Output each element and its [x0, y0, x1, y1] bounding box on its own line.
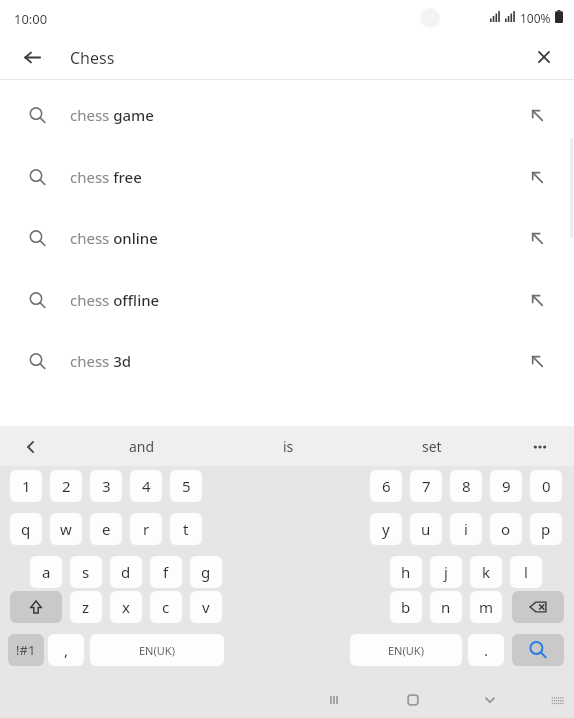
button[interactable]: d	[110, 556, 142, 588]
button[interactable]: 2	[50, 470, 82, 502]
button[interactable]: m	[470, 591, 502, 623]
button[interactable]: Insert suggestion chess 3d	[524, 348, 550, 374]
button[interactable]: o	[490, 513, 522, 545]
button[interactable]: 8	[450, 470, 482, 502]
staticText: EN(UK)	[139, 643, 175, 658]
button[interactable]: Insert suggestion chess free	[524, 164, 550, 190]
staticText: chess 3d	[70, 351, 132, 371]
button[interactable]: e	[90, 513, 122, 545]
button[interactable]: c	[150, 591, 182, 623]
button[interactable]: k	[470, 556, 502, 588]
button[interactable]: g	[190, 556, 222, 588]
button[interactable]: Backspace	[512, 591, 564, 623]
button[interactable]: 9	[490, 470, 522, 502]
button[interactable]: chess game	[0, 84, 574, 146]
button[interactable]: h	[390, 556, 422, 588]
button[interactable]: n	[430, 591, 462, 623]
staticText: l	[524, 562, 528, 582]
button[interactable]: Insert suggestion chess game	[524, 102, 550, 128]
button[interactable]: chess free	[0, 146, 574, 208]
button[interactable]: Clear search	[530, 43, 558, 71]
button[interactable]: u	[410, 513, 442, 545]
staticText: !#1	[16, 641, 36, 659]
button[interactable]: Insert suggestion chess online	[524, 225, 550, 251]
button[interactable]: 6	[370, 470, 402, 502]
button[interactable]: set	[386, 426, 478, 466]
button[interactable]: v	[190, 591, 222, 623]
staticText: 9	[502, 476, 511, 496]
staticText: 2	[62, 476, 71, 496]
button[interactable]: x	[110, 591, 142, 623]
button[interactable]: 0	[530, 470, 562, 502]
button[interactable]: chess online	[0, 207, 574, 269]
staticText: ,	[64, 640, 69, 660]
button[interactable]: s	[70, 556, 102, 588]
button[interactable]: .	[468, 634, 504, 666]
button[interactable]: Home	[401, 688, 425, 712]
button[interactable]: i	[450, 513, 482, 545]
button[interactable]: 5	[170, 470, 202, 502]
staticText: n	[441, 597, 451, 617]
staticText: u	[421, 519, 431, 539]
button[interactable]: Shift	[10, 591, 62, 623]
staticText: 8	[462, 476, 471, 496]
button[interactable]: Search	[512, 634, 564, 666]
button[interactable]: Insert suggestion chess offline	[524, 287, 550, 313]
button[interactable]: p	[530, 513, 562, 545]
button[interactable]: is	[242, 426, 334, 466]
staticText: g	[201, 562, 211, 582]
button[interactable]: !#1	[8, 634, 44, 666]
staticText: w	[60, 519, 72, 539]
button[interactable]: l	[510, 556, 542, 588]
staticText: 5	[182, 476, 191, 496]
button[interactable]: Space	[350, 634, 462, 666]
button[interactable]: a	[30, 556, 62, 588]
staticText: 3	[102, 476, 111, 496]
button[interactable]: and	[96, 426, 188, 466]
staticText: chess game	[70, 105, 154, 125]
button[interactable]: Previous suggestions	[18, 434, 44, 460]
button[interactable]: w	[50, 513, 82, 545]
button[interactable]: 4	[130, 470, 162, 502]
staticText: e	[102, 519, 111, 539]
button[interactable]: f	[150, 556, 182, 588]
button[interactable]: r	[130, 513, 162, 545]
button[interactable]: y	[370, 513, 402, 545]
button[interactable]: 3	[90, 470, 122, 502]
staticText: 4	[142, 476, 151, 496]
button[interactable]: b	[390, 591, 422, 623]
staticText: x	[122, 597, 130, 617]
button[interactable]: t	[170, 513, 202, 545]
staticText: p	[541, 519, 551, 539]
staticText: chess offline	[70, 290, 160, 310]
button[interactable]: j	[430, 556, 462, 588]
button[interactable]: Change keyboard	[545, 688, 569, 712]
button[interactable]: q	[10, 513, 42, 545]
staticText: m	[479, 597, 494, 617]
button[interactable]: 7	[410, 470, 442, 502]
button[interactable]: Navigate up	[18, 43, 46, 71]
button[interactable]: 1	[10, 470, 42, 502]
button[interactable]: z	[70, 591, 102, 623]
button[interactable]: chess offline	[0, 269, 574, 331]
button[interactable]: ,	[48, 634, 84, 666]
staticText: v	[202, 597, 210, 617]
staticText: 6	[382, 476, 391, 496]
staticText: b	[401, 597, 411, 617]
staticText: and	[129, 437, 155, 456]
button[interactable]: Space	[90, 634, 224, 666]
staticText: y	[382, 519, 390, 539]
staticText: h	[401, 562, 411, 582]
staticText: z	[82, 597, 90, 617]
staticText: o	[501, 519, 511, 539]
button[interactable]: More options	[526, 433, 554, 461]
button[interactable]: Hide keyboard	[478, 688, 502, 712]
staticText: i	[464, 519, 468, 539]
staticText: j	[444, 562, 448, 582]
button[interactable]: Recent apps	[322, 688, 346, 712]
button[interactable]: chess 3d	[0, 330, 574, 392]
staticText: chess free	[70, 167, 142, 187]
staticText: .	[484, 640, 489, 660]
staticText: EN(UK)	[388, 643, 424, 658]
staticText: 0	[542, 476, 551, 496]
